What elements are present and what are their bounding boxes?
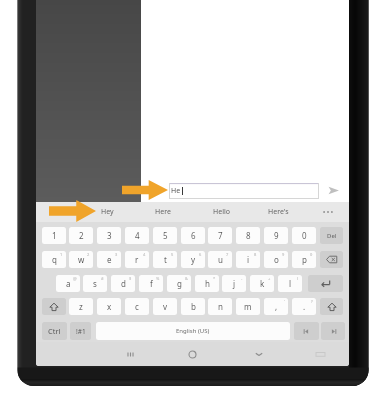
button[interactable] <box>42 298 66 315</box>
button[interactable]: Hide keyboard <box>309 342 331 366</box>
button[interactable]: English (US) <box>96 322 290 340</box>
staticText: i <box>247 254 250 265</box>
button[interactable]: q <box>42 251 66 268</box>
button[interactable]: 2 <box>69 227 93 244</box>
button[interactable]: l <box>278 275 302 292</box>
staticText: ' <box>284 299 285 304</box>
staticText: !#1 <box>76 327 86 336</box>
staticText: 1 <box>52 230 57 241</box>
staticText: z <box>79 301 83 312</box>
staticText: 7 <box>226 252 229 257</box>
staticText: 4 <box>143 252 146 257</box>
staticText: 3 <box>115 252 118 257</box>
button[interactable]: x <box>97 298 121 315</box>
button[interactable]: Ctrl <box>42 322 67 340</box>
button[interactable]: 3 <box>97 227 121 244</box>
button[interactable]: , <box>264 298 288 315</box>
button[interactable]: Here <box>138 202 188 222</box>
staticText: j <box>233 278 236 289</box>
button[interactable]: 7 <box>208 227 232 244</box>
button[interactable]: v <box>153 298 177 315</box>
button[interactable]: e <box>97 251 121 268</box>
staticText: Hey <box>101 207 114 217</box>
button[interactable]: i <box>236 251 260 268</box>
button[interactable]: 0 <box>292 227 316 244</box>
button[interactable]: r <box>125 251 149 268</box>
button[interactable]: o <box>264 251 288 268</box>
staticText: 2 <box>87 252 90 257</box>
staticText: r <box>135 254 139 265</box>
button[interactable]: He <box>169 183 319 199</box>
button[interactable]: d <box>111 275 135 292</box>
button[interactable]: z <box>69 298 93 315</box>
staticText: 6 <box>199 252 202 257</box>
staticText: o <box>274 254 279 265</box>
staticText: k <box>260 278 265 289</box>
staticText: Here <box>155 207 171 217</box>
staticText: e <box>107 254 112 265</box>
staticText: * <box>213 276 216 281</box>
button[interactable]: Send message <box>326 183 341 198</box>
button[interactable]: c <box>125 298 149 315</box>
button[interactable]: h <box>195 275 219 292</box>
button[interactable]: k <box>250 275 274 292</box>
button[interactable]: Home <box>181 342 203 366</box>
button[interactable]: 9 <box>264 227 288 244</box>
button[interactable]: 1 <box>42 227 66 244</box>
staticText: % <box>156 276 160 281</box>
staticText: 0 <box>302 230 307 241</box>
staticText: b <box>191 301 196 312</box>
staticText: 9 <box>274 230 279 241</box>
staticText: Hello <box>213 207 230 217</box>
button[interactable]: . <box>292 298 316 315</box>
button[interactable]: b <box>181 298 205 315</box>
staticText: Del <box>327 232 337 240</box>
staticText: He <box>171 186 181 196</box>
button[interactable]: Hello <box>196 202 246 222</box>
staticText: v <box>163 301 168 312</box>
staticText: 8 <box>254 252 257 257</box>
button[interactable]: j <box>222 275 246 292</box>
staticText: @ <box>73 276 77 281</box>
button[interactable]: More suggestions <box>316 202 340 222</box>
button[interactable]: f <box>139 275 163 292</box>
staticText: 3 <box>107 230 112 241</box>
button[interactable] <box>308 275 343 292</box>
button[interactable]: 4 <box>125 227 149 244</box>
button[interactable]: Back <box>248 342 270 366</box>
button[interactable]: p <box>292 251 316 268</box>
button[interactable] <box>294 322 319 340</box>
button[interactable]: w <box>69 251 93 268</box>
staticText: y <box>191 254 196 265</box>
button[interactable]: a <box>56 275 80 292</box>
button[interactable]: 5 <box>153 227 177 244</box>
button[interactable]: u <box>208 251 232 268</box>
button[interactable]: Hey <box>82 202 132 222</box>
button[interactable]: n <box>208 298 232 315</box>
button[interactable]: m <box>236 298 260 315</box>
button[interactable] <box>321 322 345 340</box>
staticText: English (US) <box>176 327 210 335</box>
staticText: + <box>268 276 271 281</box>
staticText: ( <box>297 276 299 281</box>
button[interactable]: Recents <box>119 342 141 366</box>
staticText: $ <box>129 276 132 281</box>
button[interactable] <box>320 251 343 268</box>
staticText: d <box>121 278 126 289</box>
staticText: 0 <box>310 252 313 257</box>
button[interactable]: 8 <box>236 227 260 244</box>
staticText: 9 <box>282 252 285 257</box>
staticText: m <box>244 301 252 312</box>
button[interactable]: !#1 <box>70 322 91 340</box>
button[interactable]: Here's <box>253 202 303 222</box>
button[interactable] <box>320 298 343 315</box>
button[interactable]: t <box>153 251 177 268</box>
button[interactable]: g <box>167 275 191 292</box>
staticText: s <box>93 278 97 289</box>
staticText: , <box>275 301 278 312</box>
button[interactable]: y <box>181 251 205 268</box>
button[interactable]: 6 <box>181 227 205 244</box>
staticText: 7 <box>218 230 223 241</box>
button[interactable]: s <box>83 275 107 292</box>
button[interactable]: Del <box>320 227 343 244</box>
